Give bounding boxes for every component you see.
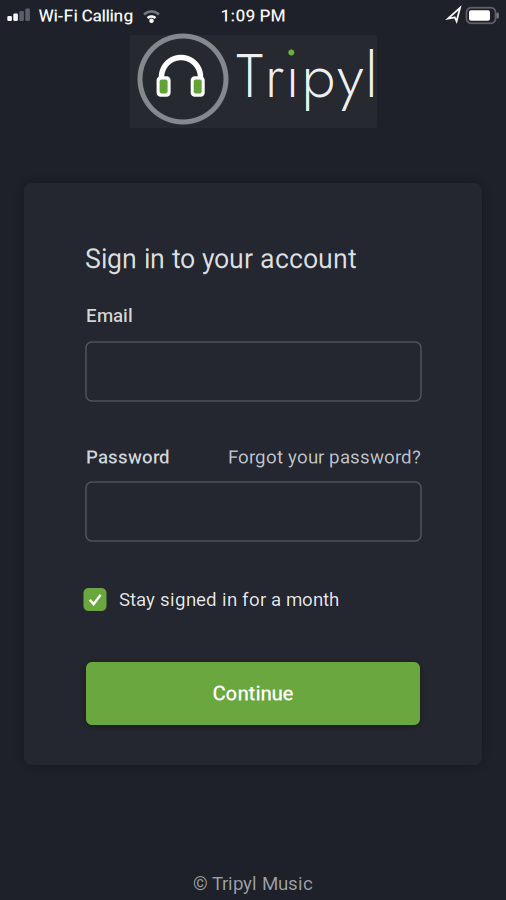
- staticText: Email: [86, 304, 133, 326]
- staticText: T: [236, 32, 263, 120]
- staticText: Sign in to your account: [85, 243, 357, 275]
- staticText: r: [265, 32, 284, 120]
- staticText: © Tripyl Music: [193, 872, 313, 894]
- staticText: l: [365, 32, 378, 120]
- staticText: ı: [286, 32, 300, 120]
- staticText: Forgot your password?: [228, 446, 421, 468]
- staticText: Stay signed in for a month: [119, 588, 339, 610]
- staticText: p: [301, 32, 335, 120]
- staticText: Continue: [212, 681, 293, 705]
- staticText: Password: [86, 446, 170, 468]
- staticText: Wi-Fi Calling: [38, 5, 133, 26]
- staticText: y: [337, 32, 363, 120]
- staticText: 1:09 PM: [220, 5, 285, 26]
